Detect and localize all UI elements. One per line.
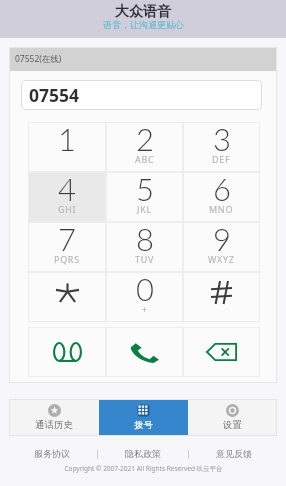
button[interactable] bbox=[28, 272, 106, 322]
staticText: TUV bbox=[135, 253, 155, 265]
staticText: PQRS bbox=[54, 253, 80, 265]
button[interactable]: 07554 bbox=[21, 80, 262, 110]
staticText: 设置 bbox=[223, 419, 242, 431]
staticText: 07552(在线) bbox=[15, 53, 62, 65]
staticText: 07554 bbox=[29, 83, 80, 107]
button[interactable]: 4 bbox=[28, 172, 106, 222]
staticText: WXYZ bbox=[208, 253, 235, 265]
button[interactable]: 服务协议 bbox=[34, 448, 70, 459]
staticText: 5 bbox=[136, 170, 154, 207]
button[interactable]: 7 bbox=[28, 222, 106, 272]
button[interactable] bbox=[183, 272, 260, 322]
staticText: 1 bbox=[58, 120, 76, 157]
button[interactable]: 通话历史 bbox=[9, 399, 99, 436]
staticText: 9 bbox=[213, 220, 231, 257]
button[interactable]: 2 bbox=[106, 122, 183, 172]
staticText: 7 bbox=[58, 220, 76, 257]
staticText: 6 bbox=[213, 170, 231, 207]
staticText: 语音，让沟通更贴心 bbox=[103, 19, 184, 30]
staticText: DEF bbox=[212, 153, 231, 165]
staticText: | bbox=[186, 447, 191, 459]
staticText: JKL bbox=[137, 203, 152, 215]
button[interactable]: Delete bbox=[183, 327, 260, 377]
button[interactable]: 9 bbox=[183, 222, 260, 272]
staticText: MNO bbox=[209, 203, 234, 215]
staticText: 通话历史 bbox=[35, 419, 73, 431]
button[interactable]: 1 bbox=[28, 122, 106, 172]
button[interactable]: 0 bbox=[106, 272, 183, 322]
staticText: 拨号 bbox=[134, 419, 153, 431]
button[interactable]: 5 bbox=[106, 172, 183, 222]
staticText: 3 bbox=[213, 120, 231, 157]
button[interactable]: Voicemail bbox=[28, 327, 106, 377]
staticText: | bbox=[95, 447, 100, 459]
staticText: 大众语音 bbox=[115, 3, 171, 21]
button[interactable]: 拨号 bbox=[99, 399, 188, 436]
button[interactable]: 隐私政策 bbox=[125, 448, 161, 459]
staticText: ABC bbox=[135, 153, 155, 165]
staticText: + bbox=[142, 303, 148, 315]
button[interactable]: 8 bbox=[106, 222, 183, 272]
button[interactable]: 3 bbox=[183, 122, 260, 172]
staticText: GHI bbox=[58, 203, 77, 215]
staticText: 8 bbox=[136, 220, 154, 257]
button[interactable]: 意见反馈 bbox=[216, 448, 252, 459]
staticText: 2 bbox=[136, 120, 154, 157]
staticText: Copyright © 2007-2021 All Rights Reserve… bbox=[64, 464, 223, 473]
staticText: 4 bbox=[58, 170, 76, 207]
button[interactable]: 6 bbox=[183, 172, 260, 222]
button[interactable]: 设置 bbox=[188, 399, 277, 436]
staticText: 0 bbox=[136, 270, 154, 307]
button[interactable]: Call bbox=[106, 327, 183, 377]
